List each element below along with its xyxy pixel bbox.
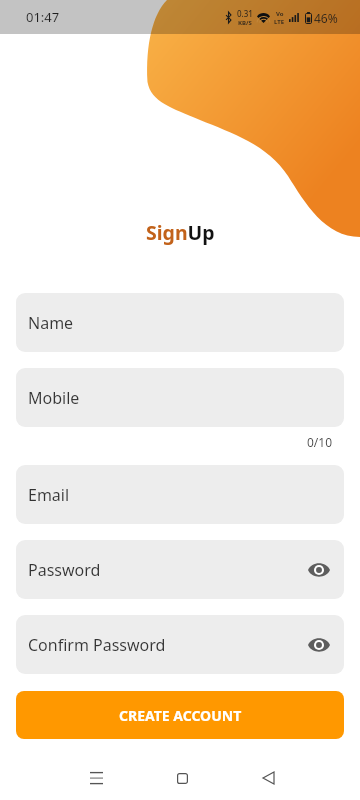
button[interactable]: Toggle password visibility — [307, 633, 331, 657]
button[interactable]: Password — [16, 540, 344, 599]
staticText: 0/10 — [307, 434, 333, 450]
button[interactable]: Name — [16, 293, 344, 352]
staticText: 46% — [314, 10, 338, 26]
staticText: CREATE ACCOUNT — [119, 706, 242, 725]
button[interactable]: Email — [16, 465, 344, 524]
button[interactable]: Toggle password visibility — [307, 558, 331, 582]
staticText: Mobile — [28, 387, 80, 409]
staticText: Email — [28, 484, 70, 506]
button[interactable]: Mobile — [16, 368, 344, 427]
staticText: SignUp — [146, 219, 215, 246]
button[interactable]: Home — [162, 758, 202, 798]
staticText: 01:47 — [26, 8, 60, 26]
button[interactable]: Confirm Password — [16, 615, 344, 674]
staticText: Vo — [276, 10, 284, 18]
staticText: Name — [28, 312, 74, 334]
button[interactable]: Back — [248, 758, 288, 798]
staticText: KB/S — [238, 19, 252, 27]
staticText: Password — [28, 559, 101, 581]
staticText: Confirm Password — [28, 634, 166, 656]
button[interactable]: Recents — [76, 758, 116, 798]
staticText: LTE — [274, 18, 285, 26]
staticText: 0.31 — [237, 8, 253, 19]
button[interactable]: CREATE ACCOUNT — [16, 691, 344, 739]
